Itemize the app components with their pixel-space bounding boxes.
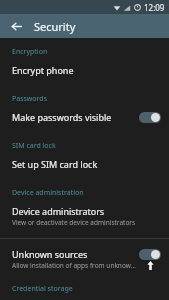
staticText: Credential storage [12,284,73,294]
staticText: Unknown sources [12,248,88,260]
staticText: Security [34,19,76,34]
button[interactable]: Make passwords visible [0,106,169,128]
staticText: 12:09 [144,2,165,13]
button[interactable]: Encrypt phone [0,59,169,81]
button[interactable]: Back [7,17,25,35]
staticText: SIM card lock [12,141,56,151]
staticText: Passwords [12,94,48,104]
staticText: Device administrators [12,205,105,217]
button[interactable]: Set up SIM card lock [0,153,169,175]
staticText: Set up SIM card lock [12,158,98,170]
staticText: Encryption [12,47,48,57]
staticText: Device administration [12,188,84,198]
button[interactable]: Device administrators [0,200,169,232]
staticText: View or deactivate device administrators [12,218,136,227]
staticText: Encrypt phone [12,64,74,76]
button[interactable]: Unknown sources [0,243,169,275]
button[interactable]: Toggle Unknown sources [139,249,161,260]
button[interactable]: Toggle Make passwords visible [139,112,161,123]
staticText: Allow installation of apps from unknown … [12,261,139,270]
staticText: Make passwords visible [12,111,112,123]
